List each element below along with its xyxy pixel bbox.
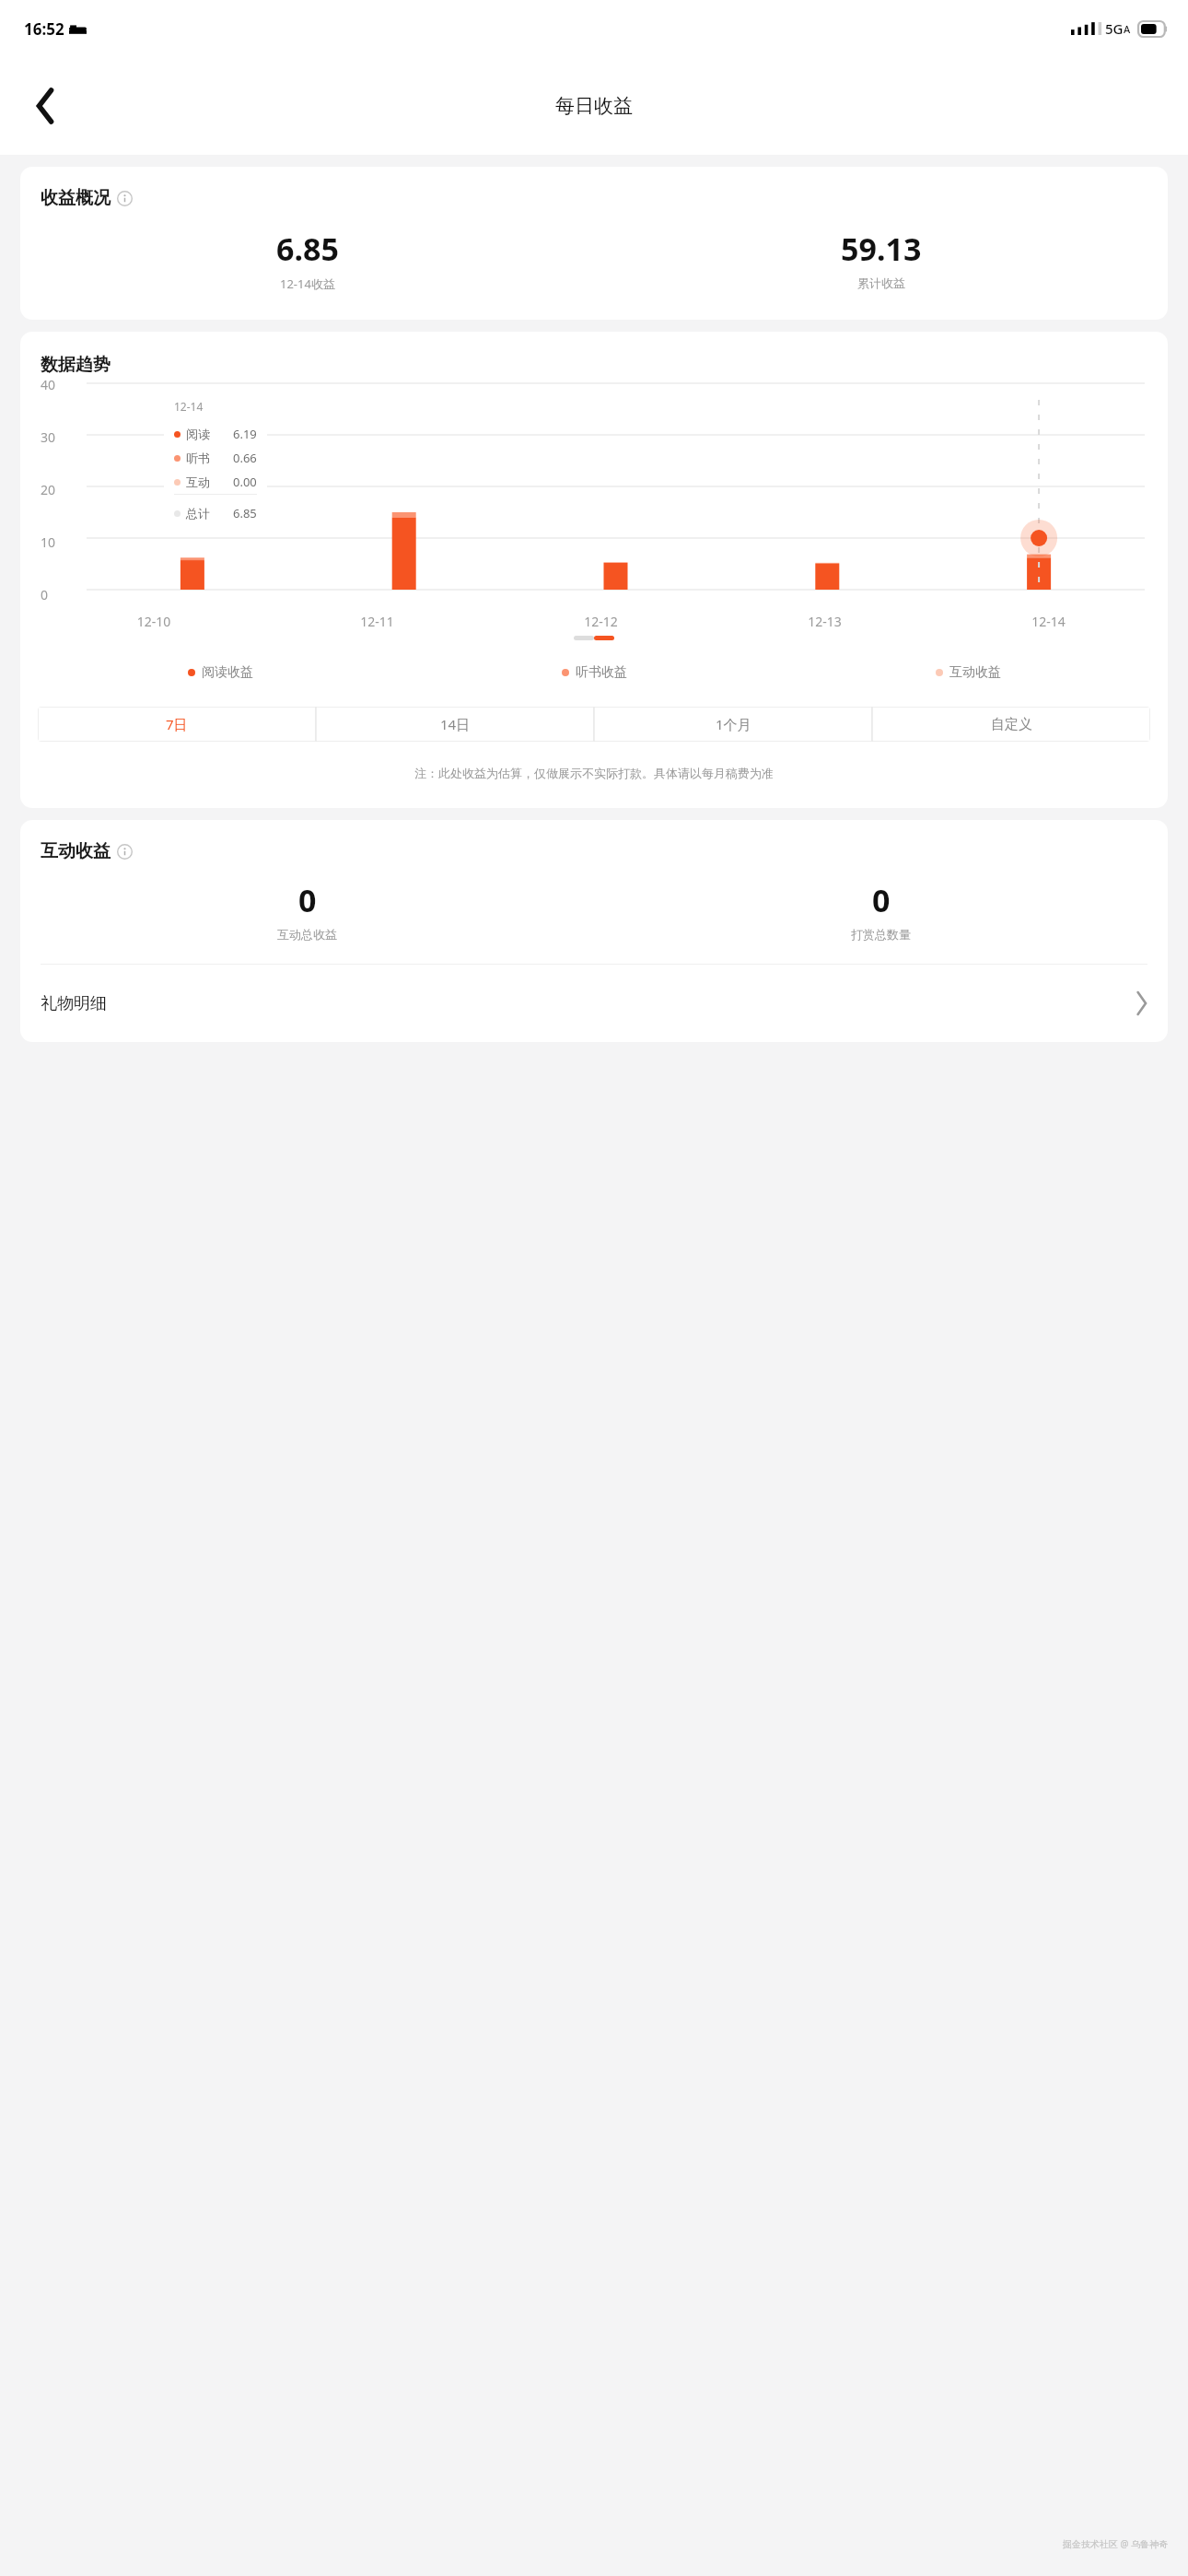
staticText: 0.66 [233, 450, 257, 466]
staticText: 16:52 [24, 18, 64, 40]
staticText: 自定义 [991, 716, 1032, 733]
button[interactable]: 互动收益说明 [117, 844, 133, 860]
staticText: 掘金技术社区 @ 乌鲁神奇 [1063, 2537, 1169, 2550]
button[interactable]: 1个月 [594, 707, 872, 742]
staticText: 10 [41, 533, 56, 551]
staticText: 累计收益 [857, 275, 905, 290]
button[interactable]: 礼物明细 [20, 965, 1168, 1042]
staticText: 6.85 [276, 228, 339, 270]
staticText: 20 [41, 481, 56, 498]
staticText: 12-13 [713, 613, 937, 630]
staticText: 数据趋势 [41, 354, 111, 376]
staticText: 收益概况 [41, 187, 111, 209]
button[interactable]: 7日 [38, 707, 316, 742]
staticText: 听书收益 [576, 664, 627, 681]
staticText: 12-11 [265, 613, 489, 630]
staticText: 12-14收益 [280, 275, 335, 292]
button[interactable]: 自定义 [872, 707, 1150, 742]
staticText: 12-10 [42, 613, 265, 630]
staticText: 互动收益 [949, 664, 1001, 681]
staticText: 听书 [186, 451, 210, 465]
staticText: 互动总收益 [277, 927, 337, 942]
staticText: A [1124, 22, 1131, 36]
staticText: 14日 [440, 715, 471, 733]
staticText: 59.13 [841, 228, 922, 270]
staticText: 30 [41, 428, 56, 446]
staticText: 互动 [186, 474, 210, 489]
staticText: 注：此处收益为估算，仅做展示不实际打款。具体请以每月稿费为准 [20, 766, 1168, 780]
staticText: 0 [298, 879, 317, 921]
staticText: 6.85 [233, 505, 257, 521]
button[interactable]: 收益概况说明 [117, 191, 133, 206]
staticText: 5G [1105, 19, 1124, 38]
staticText: 6.19 [233, 426, 257, 442]
staticText: 打赏总数量 [851, 927, 911, 942]
staticText: 0.00 [233, 474, 257, 490]
staticText: 12-14 [174, 399, 204, 414]
staticText: 0 [872, 879, 891, 921]
staticText: 40 [41, 376, 56, 393]
button[interactable]: 14日 [316, 707, 594, 742]
staticText: 互动收益 [41, 840, 111, 862]
staticText: 总计 [186, 506, 210, 521]
staticText: 12-12 [489, 613, 713, 630]
staticText: 礼物明细 [41, 993, 107, 1014]
staticText: 阅读收益 [202, 664, 253, 681]
staticText: 阅读 [186, 427, 210, 441]
staticText: 1个月 [716, 715, 751, 733]
button[interactable]: Back [20, 80, 72, 132]
staticText: 7日 [166, 715, 188, 733]
staticText: 12-14 [937, 613, 1160, 630]
staticText: 每日收益 [555, 94, 633, 118]
staticText: 0 [41, 586, 49, 603]
